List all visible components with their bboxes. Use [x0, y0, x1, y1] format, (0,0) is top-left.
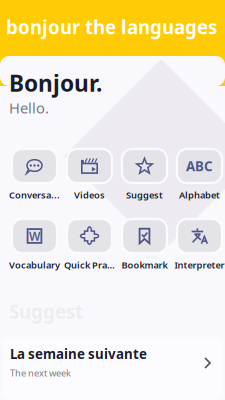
staticText: Bookmark [121, 259, 167, 271]
button[interactable]: Bookmark [119, 219, 170, 271]
button[interactable]: Quick Pra... [64, 219, 115, 271]
staticText: Bonjour. [9, 68, 102, 98]
staticText: bonjour the languages [6, 15, 217, 39]
staticText: La semaine suivante [10, 345, 147, 363]
button[interactable]: W [9, 219, 60, 271]
staticText: ABC [186, 157, 213, 175]
staticText: W [29, 228, 40, 244]
button[interactable]: Videos [64, 149, 115, 201]
staticText: Suggest [9, 299, 83, 324]
staticText: Videos [74, 189, 105, 201]
staticText: Vocabulary [9, 259, 60, 271]
button[interactable]: Interpreter [174, 219, 225, 271]
button[interactable]: bonjour the languages [0, 0, 225, 56]
button[interactable]: La semaine suivante [3, 337, 222, 400]
button[interactable]: ABC [174, 149, 225, 201]
button[interactable]: Conversa... [9, 149, 60, 201]
staticText: Interpreter [174, 259, 224, 271]
staticText: Hello. [9, 98, 49, 117]
button[interactable]: Suggest [119, 149, 170, 201]
staticText: Suggest [126, 189, 163, 201]
staticText: The next week [10, 367, 71, 379]
staticText: Conversa... [9, 189, 60, 201]
staticText: Quick Pra... [64, 259, 115, 271]
staticText: Alphabet [179, 189, 220, 201]
